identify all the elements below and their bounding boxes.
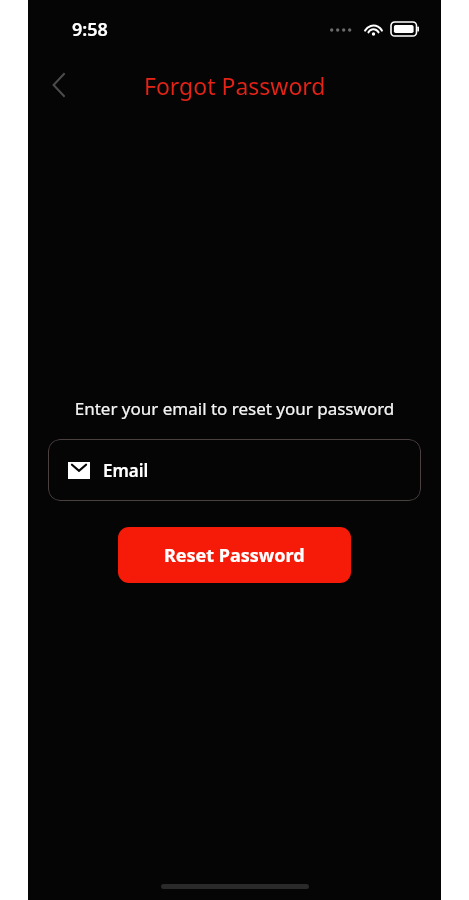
staticText: Email xyxy=(103,459,149,482)
button[interactable]: Email xyxy=(48,439,421,501)
button[interactable]: Back xyxy=(36,63,80,107)
staticText: Reset Password xyxy=(164,543,305,568)
staticText: Forgot Password xyxy=(144,70,326,101)
staticText: Enter your email to reset your password xyxy=(44,397,425,420)
button[interactable]: Reset Password xyxy=(118,527,351,583)
staticText: 9:58 xyxy=(72,17,108,42)
